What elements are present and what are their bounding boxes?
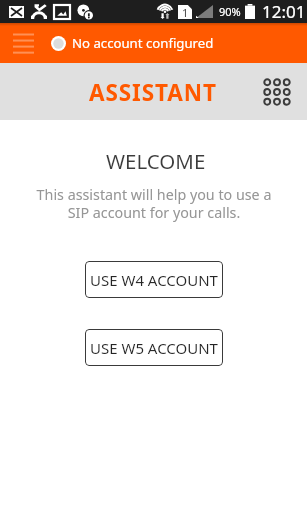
staticText: USE W5 ACCOUNT	[90, 338, 218, 358]
staticText: No account configured	[72, 34, 214, 52]
staticText: ASSISTANT	[89, 77, 217, 108]
staticText: 12:01	[262, 0, 306, 23]
button[interactable]: USE W4 ACCOUNT	[85, 261, 223, 298]
button[interactable]: USE W5 ACCOUNT	[85, 329, 223, 366]
staticText: This assistant will help you to use a SI…	[9, 185, 299, 223]
staticText: WELCOME	[106, 147, 206, 175]
button[interactable]: Open navigation menu	[0, 23, 46, 63]
staticText: 1	[182, 5, 189, 19]
button[interactable]: Dial pad	[255, 63, 299, 120]
staticText: 90%	[219, 4, 241, 19]
staticText: USE W4 ACCOUNT	[90, 270, 218, 290]
